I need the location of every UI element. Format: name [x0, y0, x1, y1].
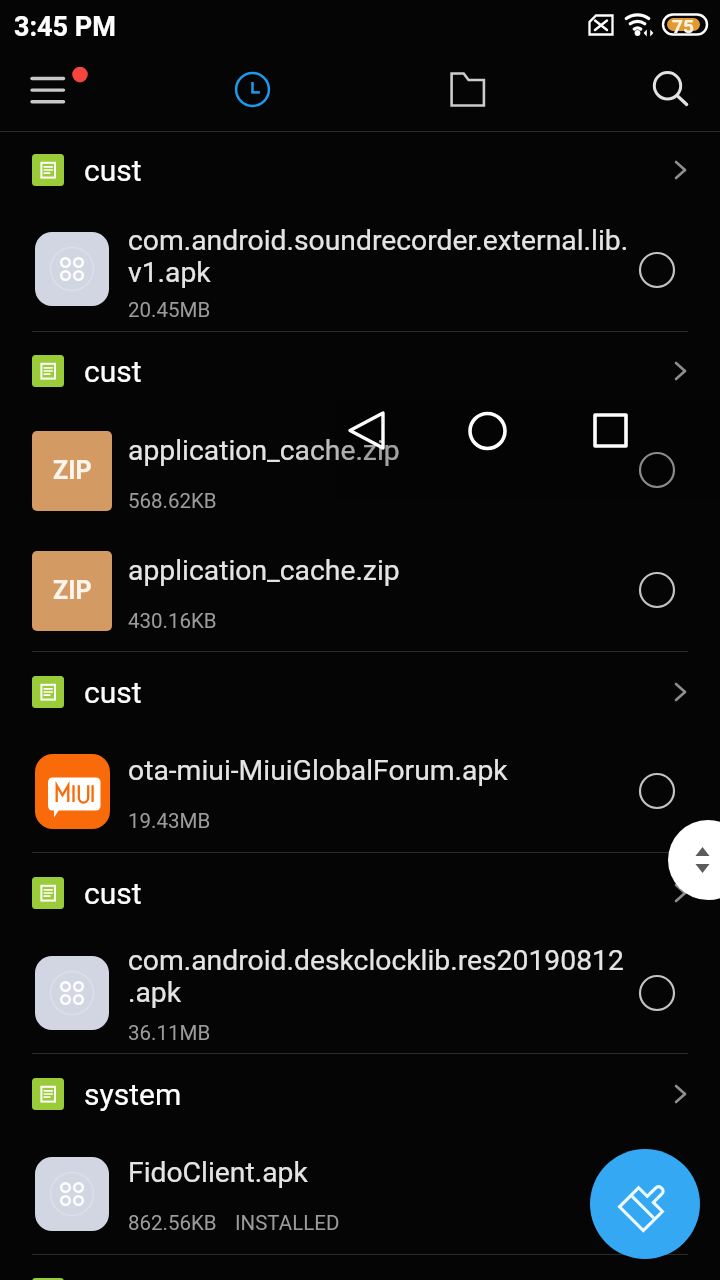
button[interactable]: ZIP	[0, 401, 720, 521]
staticText: 568.62KB	[128, 489, 217, 513]
staticText: ZIP	[53, 576, 92, 605]
staticText: 36.11MB	[128, 1021, 211, 1045]
staticText: com.android.deskclocklib.res20190812 .ap…	[128, 944, 624, 1009]
button[interactable]: Folders	[440, 60, 496, 120]
staticText: application_cache.zip	[128, 434, 400, 467]
button[interactable]: Select	[639, 975, 675, 1011]
staticText: cust	[84, 354, 142, 389]
button[interactable]: system	[0, 1056, 720, 1132]
staticText: cust	[84, 675, 142, 710]
button[interactable]: Select	[639, 452, 675, 488]
staticText: ota-miui-MiuiGlobalForum.apk	[128, 754, 508, 787]
staticText: system	[84, 1077, 182, 1112]
button[interactable]: ota-miui-MiuiGlobalForum.apk	[0, 722, 720, 852]
button[interactable]: cust	[0, 654, 720, 730]
button[interactable]: FidoClient.apk	[0, 1124, 720, 1254]
staticText: ZIP	[53, 456, 92, 485]
staticText: 430.16KB	[128, 609, 217, 633]
button[interactable]: Select	[639, 773, 675, 809]
staticText: 3:45 PM	[14, 11, 116, 43]
staticText: 75	[672, 15, 694, 37]
staticText: 862.56KB	[128, 1211, 217, 1235]
button[interactable]: cust	[0, 132, 720, 208]
button[interactable]: com.android.deskclocklib.res20190812 .ap…	[0, 923, 720, 1053]
button[interactable]: Select	[639, 1175, 675, 1211]
staticText: application_cache.zip	[128, 554, 400, 587]
button[interactable]: com.android.soundrecorder.external.lib. …	[0, 200, 720, 331]
button[interactable]: ZIP	[0, 521, 720, 651]
button[interactable]: Scroll	[668, 820, 720, 900]
staticText: 19.43MB	[128, 809, 211, 833]
button[interactable]: Clean	[590, 1149, 700, 1259]
staticText: 20.45MB	[128, 298, 211, 322]
button[interactable]: Select	[639, 252, 675, 288]
button[interactable]: Recent	[220, 58, 285, 122]
button[interactable]: Menu	[16, 60, 96, 124]
button[interactable]: cust	[0, 333, 720, 409]
button[interactable]: Select	[639, 572, 675, 608]
button[interactable]: cust	[0, 855, 720, 931]
staticText: cust	[84, 153, 142, 188]
button[interactable]: Search	[640, 60, 704, 120]
staticText: cust	[84, 876, 142, 911]
staticText: INSTALLED	[235, 1211, 340, 1235]
staticText: com.android.soundrecorder.external.lib. …	[128, 224, 629, 289]
staticText: FidoClient.apk	[128, 1156, 308, 1189]
